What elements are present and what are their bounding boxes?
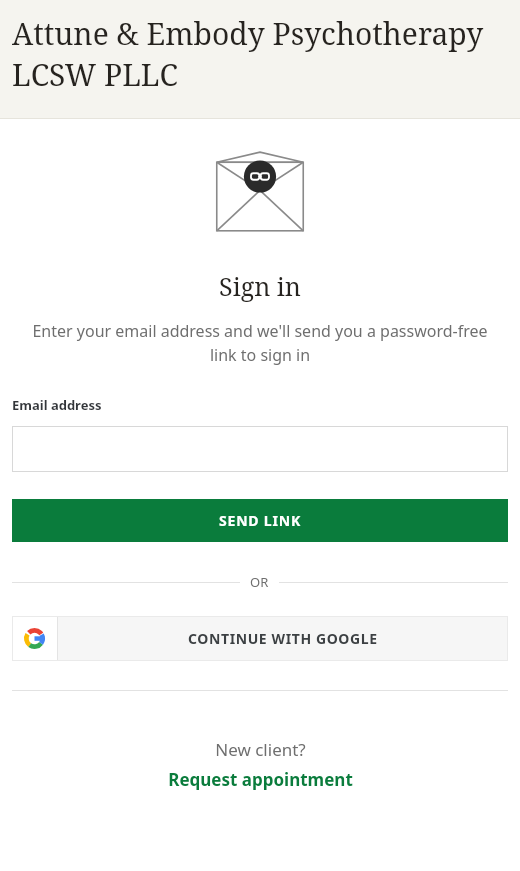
button[interactable]: CONTINUE WITH GOOGLE xyxy=(12,616,508,661)
staticText: SEND LINK xyxy=(219,511,301,530)
staticText: Sign in xyxy=(219,269,301,303)
button[interactable]: SEND LINK xyxy=(12,499,508,542)
staticText: LCSW PLLC xyxy=(12,54,178,95)
staticText: CONTINUE WITH GOOGLE xyxy=(188,629,378,648)
staticText: Enter your email address and we'll send … xyxy=(24,320,496,366)
button[interactable]: Request appointment xyxy=(168,768,353,791)
staticText: Request appointment xyxy=(168,768,353,791)
staticText: Attune & Embody Psychotherapy xyxy=(12,13,484,54)
staticText: Email address xyxy=(12,396,102,414)
button[interactable] xyxy=(12,426,508,472)
staticText: New client? xyxy=(215,738,306,761)
staticText: OR xyxy=(250,573,269,591)
